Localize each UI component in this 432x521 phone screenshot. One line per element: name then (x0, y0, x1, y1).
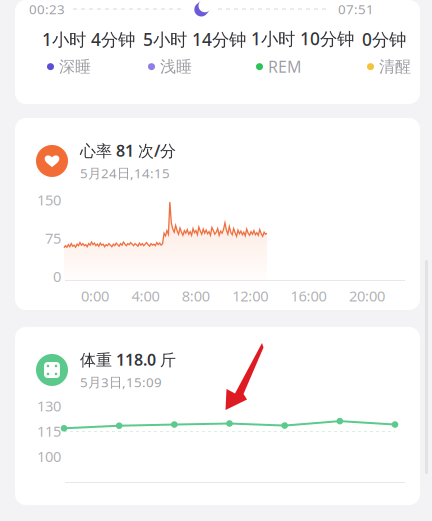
staticText: 0分钟 (362, 28, 406, 51)
staticText: 5月3日,15:09 (80, 373, 162, 391)
staticText: 5小时 14分钟 (143, 28, 246, 51)
staticText: 1小时 10分钟 (251, 27, 354, 50)
staticText: 深睡 (59, 57, 91, 76)
staticText: 07:51 (338, 0, 374, 18)
button[interactable]: 心率 81 次/分 (15, 118, 420, 310)
staticText: 8:00 (182, 286, 210, 305)
staticText: 0 (53, 266, 61, 286)
staticText: 0:00 (81, 286, 109, 305)
staticText: 1小时 4分钟 (42, 28, 135, 51)
staticText: 16:00 (291, 286, 327, 305)
staticText: 20:00 (349, 286, 385, 305)
staticText: 75 (45, 228, 61, 248)
staticText: 115 (37, 421, 61, 441)
staticText: 5月24日,14:15 (80, 164, 170, 182)
staticText: 浅睡 (160, 57, 192, 76)
staticText: 清醒 (379, 57, 411, 76)
staticText: 心率 81 次/分 (80, 140, 176, 161)
staticText: 体重 118.0 斤 (80, 349, 176, 370)
staticText: 12:00 (232, 286, 268, 305)
button[interactable]: 00:23 (15, 0, 420, 104)
staticText: REM (268, 56, 302, 77)
staticText: 4:00 (131, 286, 159, 305)
button[interactable]: 体重 118.0 斤 (15, 327, 420, 505)
staticText: 00:23 (29, 0, 65, 18)
staticText: 100 (37, 446, 61, 466)
staticText: 150 (37, 190, 61, 209)
staticText: 130 (37, 396, 61, 415)
